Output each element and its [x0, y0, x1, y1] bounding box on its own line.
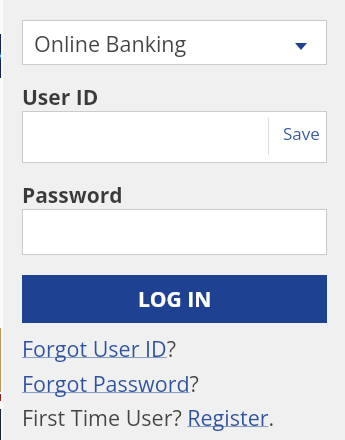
staticText: User ID: [22, 83, 99, 112]
button[interactable]: Forgot Password?: [22, 369, 199, 398]
staticText: Forgot User ID?: [22, 334, 176, 363]
button[interactable]: [22, 209, 327, 255]
button[interactable]: First Time User? Register.: [22, 403, 275, 432]
button[interactable]: LOG IN: [22, 275, 327, 323]
staticText: LOG IN: [138, 285, 212, 314]
button[interactable]: Save: [22, 111, 327, 163]
staticText: Online Banking: [34, 29, 187, 58]
staticText: Forgot Password?: [22, 369, 199, 398]
staticText: Password: [22, 181, 123, 210]
button[interactable]: Forgot User ID?: [22, 334, 176, 363]
other: Open account type menu: [295, 43, 307, 50]
button[interactable]: Save: [269, 108, 331, 158]
staticText: First Time User? Register.: [22, 403, 275, 432]
button[interactable]: Online Banking: [22, 20, 327, 65]
staticText: Save: [283, 122, 320, 145]
